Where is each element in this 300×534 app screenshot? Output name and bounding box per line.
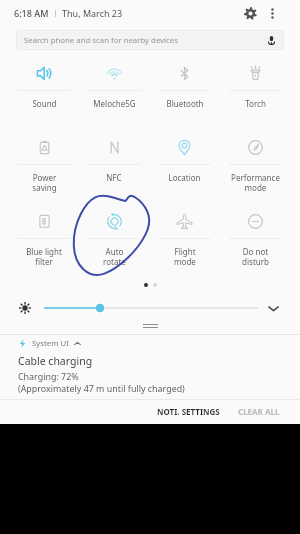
staticText: System UI <box>32 338 69 349</box>
button[interactable]: NOTI. SETTINGS <box>153 401 224 422</box>
button[interactable]: System UI <box>18 338 81 349</box>
staticText: Auto rotate <box>103 246 126 267</box>
staticText: Do not disturb <box>242 246 269 267</box>
staticText: 6:18 AM <box>14 7 49 19</box>
button[interactable]: Auto rotate <box>79 204 149 278</box>
button[interactable]: CLEAR ALL <box>234 401 284 422</box>
button[interactable]: Do not disturb <box>220 204 291 278</box>
staticText: Performance mode <box>231 172 280 193</box>
staticText: Blue light filter <box>26 246 62 267</box>
staticText: Meloche5G <box>93 98 136 109</box>
button[interactable]: Sound <box>9 56 79 130</box>
button[interactable]: Brightness <box>18 301 32 315</box>
button[interactable]: Meloche5G <box>79 56 149 130</box>
staticText: Sound <box>32 98 57 109</box>
staticText: Location <box>168 172 201 183</box>
button[interactable]: Location <box>149 130 220 204</box>
staticText: Charging: 72% <box>18 370 79 382</box>
button[interactable]: Flight mode <box>149 204 220 278</box>
button[interactable]: Bluetooth <box>149 56 220 130</box>
button[interactable]: Performance mode <box>220 130 291 204</box>
staticText: (Approximately 47 m until fully charged) <box>18 382 185 394</box>
staticText: Bluetooth <box>166 98 204 109</box>
staticText: NFC <box>106 172 122 183</box>
button[interactable]: Settings <box>239 2 261 24</box>
staticText: Search phone and scan for nearby devices <box>24 35 178 46</box>
staticText: NOTI. SETTINGS <box>157 406 220 417</box>
button[interactable]: NFC <box>79 130 149 204</box>
button[interactable]: Expand <box>265 300 281 316</box>
staticText: Torch <box>245 98 266 109</box>
staticText: Power saving <box>32 172 57 193</box>
button[interactable]: Search phone and scan for nearby devices <box>16 30 284 50</box>
staticText: Cable charging <box>18 354 93 368</box>
staticText: Flight mode <box>174 246 196 267</box>
button[interactable]: More options <box>261 2 283 24</box>
staticText: Thu, March 23 <box>62 7 123 19</box>
button[interactable]: Blue light filter <box>9 204 79 278</box>
button[interactable]: Torch <box>220 56 291 130</box>
button[interactable]: Power saving <box>9 130 79 204</box>
staticText: CLEAR ALL <box>238 406 280 417</box>
